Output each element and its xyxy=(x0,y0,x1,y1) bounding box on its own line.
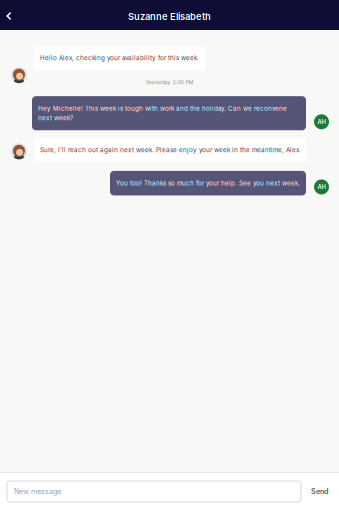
staticText: AH xyxy=(317,183,325,190)
button[interactable]: New message xyxy=(7,481,301,502)
button[interactable]: Back xyxy=(0,0,21,30)
staticText: Yesterday 2:00 PM xyxy=(145,79,193,86)
staticText: You too! Thanks so much for your help. S… xyxy=(116,179,300,187)
staticText: Send xyxy=(311,487,328,496)
staticText: Hello Alex, checking your availability f… xyxy=(40,54,199,62)
staticText: New message xyxy=(14,487,61,496)
button[interactable]: Send xyxy=(306,481,333,502)
staticText: Hey Michelle! This week is tough with wo… xyxy=(38,105,287,122)
staticText: AH xyxy=(317,118,325,125)
staticText: Sure, I'll reach out again next week. Pl… xyxy=(40,146,301,154)
staticText: Suzanne Elisabeth xyxy=(128,11,211,22)
